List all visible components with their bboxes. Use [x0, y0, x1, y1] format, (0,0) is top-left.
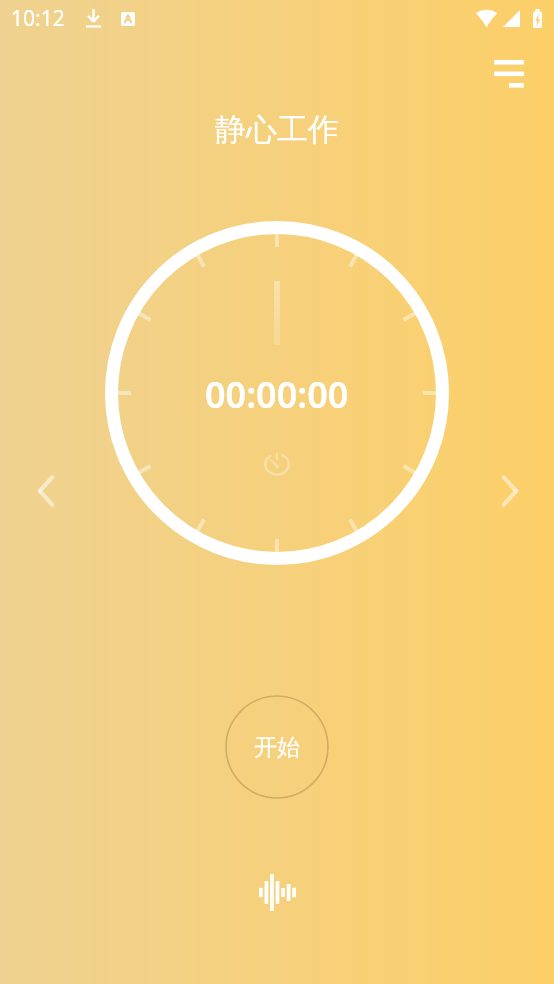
button[interactable]: Reset timer [264, 451, 290, 477]
button[interactable]: Next preset [483, 464, 537, 518]
button[interactable]: Ambient sound [247, 862, 308, 923]
button[interactable]: Menu [482, 46, 536, 100]
staticText: 00:00:00 [205, 370, 349, 419]
staticText: 静心工作 [215, 110, 339, 149]
button[interactable]: Previous preset [19, 464, 73, 518]
button[interactable]: 开始 [225, 695, 329, 799]
staticText: 10:12 [11, 4, 65, 33]
staticText: 开始 [254, 733, 300, 762]
